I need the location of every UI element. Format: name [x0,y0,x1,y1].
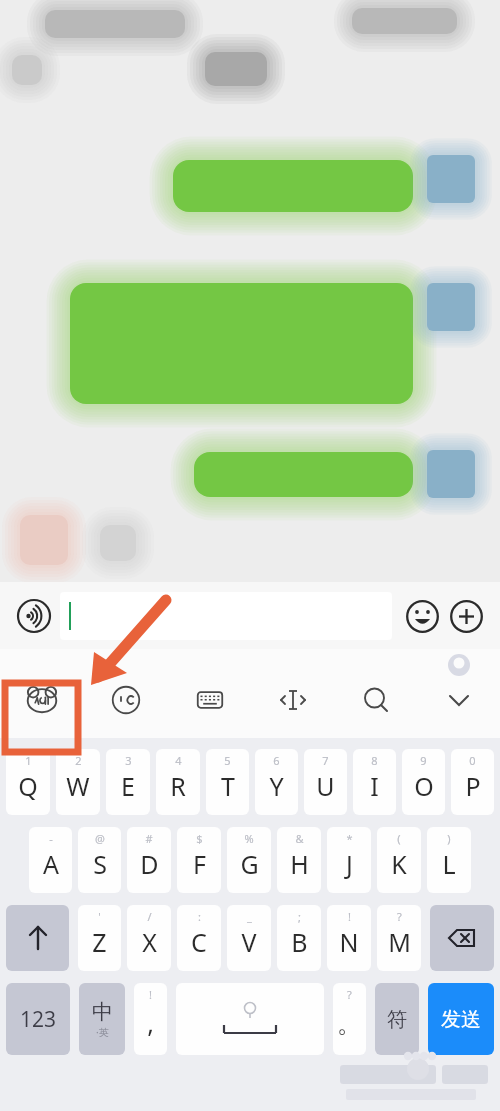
button[interactable]: 5 [206,749,249,815]
button[interactable]: 中 [79,983,125,1055]
staticText: F [193,847,206,881]
staticText: 5 [224,753,231,768]
button[interactable]: More [444,594,488,638]
button[interactable]: 123 [6,983,70,1055]
staticText: ( [397,831,401,846]
staticText: C [191,925,207,959]
button[interactable]: & [277,827,321,893]
staticText: ' [98,909,101,924]
button[interactable]: ! [327,905,371,971]
staticText: Q [18,769,38,803]
staticText: 7 [322,753,329,768]
staticText: J [346,847,353,881]
staticText: P [465,769,481,803]
staticText: 3 [125,753,132,768]
staticText: O [414,769,434,803]
staticText: A [43,847,59,881]
button[interactable]: Search [334,661,417,738]
button[interactable]: ! [134,983,167,1055]
staticText: ·英 [96,1025,109,1039]
button[interactable]: Shift [6,905,69,971]
staticText: 发送 [441,1007,481,1032]
staticText: ) [447,831,451,846]
staticText: Y [269,769,284,803]
staticText: X [142,925,157,959]
staticText: 1 [25,753,32,768]
staticText: 。 [337,1008,362,1039]
staticText: 0 [469,753,476,768]
button[interactable]: - [29,827,72,893]
button[interactable]: Collapse [417,661,500,738]
staticText: 2 [75,753,82,768]
button[interactable]: @ [78,827,121,893]
staticText: _ [247,909,252,924]
staticText: 8 [371,753,378,768]
button[interactable]: Emoticons [84,661,168,738]
button[interactable]: ' [78,905,121,971]
staticText: % [244,831,254,846]
staticText: D [140,847,159,881]
button[interactable]: 3 [106,749,150,815]
button[interactable]: ? [377,905,421,971]
button[interactable]: 符 [375,983,419,1055]
staticText: , [147,1006,154,1040]
button[interactable]: 6 [255,749,298,815]
button[interactable]: ( [377,827,421,893]
button[interactable]: 8 [353,749,396,815]
staticText: W [66,769,90,803]
button[interactable]: % [227,827,271,893]
button[interactable]: 发送 [428,983,494,1055]
staticText: 9 [420,753,427,768]
staticText: / [147,909,152,924]
button[interactable]: Baidu input [0,661,84,738]
staticText: 6 [273,753,280,768]
staticText: R [170,769,186,803]
button[interactable]: 0 [451,749,494,815]
staticText: V [241,925,257,959]
button[interactable]: 2 [56,749,100,815]
staticText: 4 [175,753,182,768]
button[interactable]: Keyboard layout [168,661,251,738]
button[interactable]: ) [427,827,471,893]
button[interactable]: Cursor [251,661,334,738]
staticText: T [221,769,235,803]
staticText: B [291,925,308,959]
staticText: N [339,925,359,959]
button[interactable]: 1 [6,749,50,815]
button[interactable]: Backspace [430,905,494,971]
staticText: L [442,847,456,881]
staticText: K [391,847,407,881]
button[interactable]: _ [227,905,271,971]
button[interactable]: Emoji [400,594,444,638]
button[interactable]: / [127,905,171,971]
staticText: * [346,831,353,846]
button[interactable]: 7 [304,749,347,815]
button[interactable]: * [327,827,371,893]
staticText: I [370,769,379,803]
button[interactable]: : [177,905,221,971]
button[interactable]: ? [333,983,366,1055]
button[interactable]: 4 [156,749,200,815]
staticText: G [240,847,259,881]
staticText: 123 [20,1005,57,1034]
staticText: M [388,925,411,959]
staticText: $ [196,831,203,846]
button[interactable]: Voice input [12,594,56,638]
staticText: - [49,831,53,846]
staticText: ! [348,909,351,924]
staticText: ? [347,987,352,1002]
staticText: H [290,847,309,881]
staticText: Z [92,925,107,959]
button[interactable] [176,983,324,1055]
staticText: ? [397,909,402,924]
staticText: ; [298,909,301,924]
staticText: @ [95,831,105,846]
staticText: S [93,847,107,881]
button[interactable]: $ [177,827,221,893]
staticText: E [121,769,135,803]
button[interactable]: 9 [402,749,445,815]
button[interactable]: # [127,827,171,893]
button[interactable]: ; [277,905,321,971]
button[interactable] [60,592,392,640]
staticText: # [145,831,153,846]
